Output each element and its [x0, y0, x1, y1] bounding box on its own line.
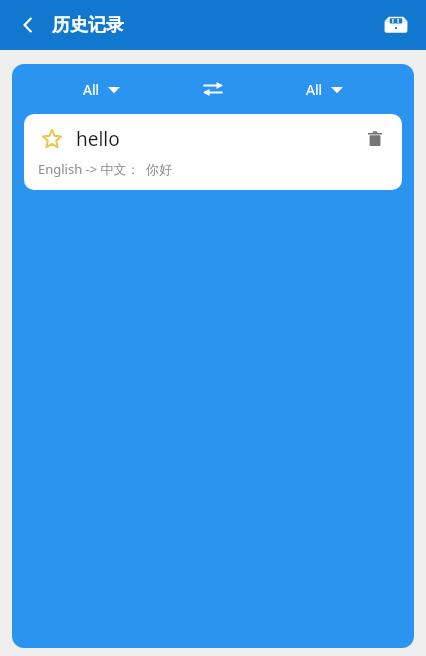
staticText: English -> 中文： — [38, 160, 140, 178]
button[interactable]: Favorite — [24, 114, 402, 190]
button[interactable]: Storage — [376, 5, 416, 45]
button[interactable]: All — [73, 74, 130, 105]
staticText: hello — [76, 126, 360, 152]
staticText: 你好 — [146, 161, 172, 177]
staticText: All — [83, 80, 100, 99]
staticText: All — [306, 80, 323, 99]
button[interactable]: Back — [8, 5, 48, 45]
staticText: 历史记录 — [52, 14, 124, 37]
button[interactable]: Favorite — [38, 125, 66, 153]
button[interactable]: Delete — [360, 124, 390, 154]
button[interactable]: All — [296, 74, 353, 105]
button[interactable]: Swap languages — [191, 67, 235, 111]
